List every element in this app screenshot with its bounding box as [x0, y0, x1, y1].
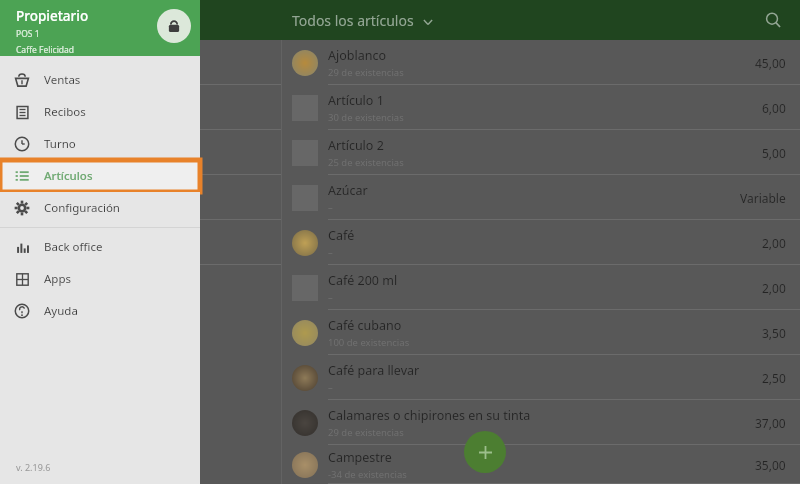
staticText: 2,00	[762, 280, 786, 296]
staticText: POS 1	[16, 28, 40, 40]
staticText: –	[328, 291, 333, 304]
button[interactable]: Café	[282, 220, 800, 265]
button[interactable]: Apps	[0, 263, 200, 295]
staticText: Campestre	[328, 449, 392, 466]
button[interactable]: Artículo 1	[282, 85, 800, 130]
staticText: Ventas	[44, 72, 81, 88]
button[interactable]: Artículo 2	[282, 130, 800, 175]
button[interactable]: Recibos	[0, 96, 200, 128]
button[interactable]: Bloquear	[157, 9, 191, 43]
staticText: 29 de existencias	[328, 66, 404, 79]
staticText: –	[328, 201, 333, 214]
staticText: Ajoblanco	[328, 47, 386, 64]
staticText: 25 de existencias	[328, 156, 404, 169]
staticText: Variable	[740, 190, 786, 206]
staticText: 5,00	[762, 145, 786, 161]
staticText: v. 2.19.6	[16, 461, 51, 473]
staticText: Artículo 2	[328, 137, 384, 154]
button[interactable]: Azúcar	[282, 175, 800, 220]
button[interactable]: Back office	[0, 231, 200, 263]
staticText: Café para llevar	[328, 362, 420, 379]
staticText: 29 de existencias	[328, 426, 404, 439]
button[interactable]: Configuración	[0, 192, 200, 224]
staticText: Caffe Felicidad	[16, 44, 75, 56]
staticText: Apps	[44, 271, 72, 287]
staticText: –	[328, 246, 333, 259]
staticText: 45,00	[755, 55, 786, 71]
staticText: Café 200 ml	[328, 272, 398, 289]
button[interactable]: Todos los artículos	[292, 11, 433, 30]
button[interactable]: Añadir artículo	[464, 431, 506, 473]
staticText: Back office	[44, 239, 103, 255]
button[interactable]: Artículos	[0, 160, 200, 192]
staticText: 100 de existencias	[328, 336, 410, 349]
staticText: Artículo 1	[328, 92, 384, 109]
staticText: Café cubano	[328, 317, 402, 334]
staticText: 2,00	[762, 235, 786, 251]
button[interactable]: Café para llevar	[282, 355, 800, 400]
staticText: 3,50	[762, 325, 786, 341]
staticText: 6,00	[762, 100, 786, 116]
button[interactable]: Campestre	[282, 445, 800, 484]
button[interactable]: Buscar	[756, 3, 790, 37]
staticText: Artículos	[44, 168, 93, 184]
button[interactable]: Propietario	[0, 0, 200, 56]
staticText: –	[328, 381, 333, 394]
button[interactable]: Café 200 ml	[282, 265, 800, 310]
staticText: Propietario	[16, 7, 89, 25]
button[interactable]: Café cubano	[282, 310, 800, 355]
staticText: Azúcar	[328, 182, 368, 199]
staticText: Todos los artículos	[292, 11, 414, 30]
staticText: Turno	[44, 136, 76, 152]
staticText: 30 de existencias	[328, 111, 404, 124]
staticText: 2,50	[762, 370, 786, 386]
button[interactable]: Turno	[0, 128, 200, 160]
button[interactable]: Ayuda	[0, 295, 200, 327]
staticText: 35,00	[755, 457, 786, 473]
button[interactable]: Calamares o chipirones en su tinta	[282, 400, 800, 445]
staticText: Configuración	[44, 200, 120, 216]
staticText: Café	[328, 227, 355, 244]
button[interactable]: Ajoblanco	[282, 40, 800, 85]
button[interactable]: Ventas	[0, 64, 200, 96]
staticText: -34 de existencias	[328, 468, 407, 481]
staticText: Calamares o chipirones en su tinta	[328, 407, 531, 424]
staticText: 37,00	[755, 415, 786, 431]
staticText: Recibos	[44, 104, 86, 120]
staticText: Ayuda	[44, 303, 78, 319]
